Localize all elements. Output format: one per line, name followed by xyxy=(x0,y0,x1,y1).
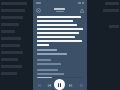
button[interactable]: Previous xyxy=(46,82,52,88)
button[interactable] xyxy=(37,16,83,75)
button[interactable]: Next xyxy=(67,82,73,88)
button[interactable]: Share xyxy=(79,8,84,13)
button[interactable]: Seek xyxy=(37,75,83,79)
button[interactable]: Close xyxy=(36,8,41,13)
button[interactable]: Repeat xyxy=(78,82,84,88)
button[interactable]: Shuffle xyxy=(36,82,42,88)
button[interactable]: Pause xyxy=(54,79,65,90)
